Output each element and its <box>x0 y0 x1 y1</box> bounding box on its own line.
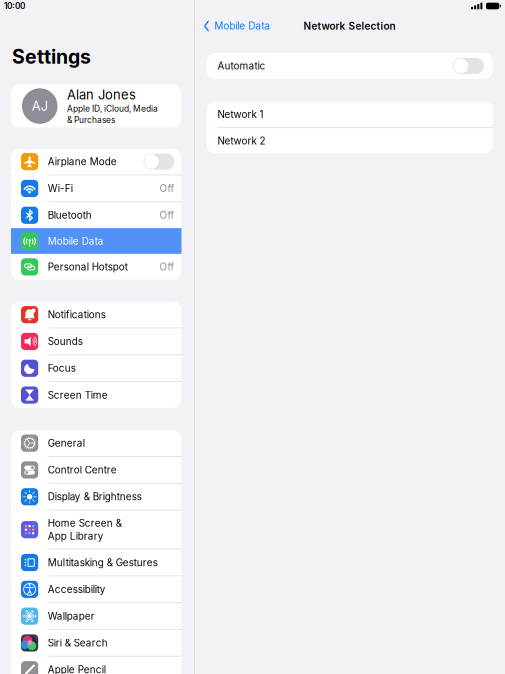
staticText: Multitasking & Gestures <box>48 557 158 568</box>
button[interactable]: Display & Brightness <box>11 484 181 510</box>
staticText: Personal Hotspot <box>48 261 128 273</box>
staticText: Off <box>159 261 174 273</box>
staticText: Apple Pencil <box>48 664 106 674</box>
staticText: AJ <box>32 98 48 114</box>
staticText: Bluetooth <box>48 209 92 221</box>
button[interactable]: Wallpaper <box>11 603 181 629</box>
button[interactable]: Control Centre <box>11 457 181 483</box>
staticText: 10:00 <box>4 1 25 11</box>
button[interactable]: Airplane Mode <box>11 149 181 175</box>
staticText: Network Selection <box>304 20 396 32</box>
button[interactable]: Screen Time <box>11 382 181 408</box>
staticText: General <box>48 437 85 449</box>
staticText: Airplane Mode <box>48 156 117 168</box>
staticText: Network 1 <box>217 108 263 120</box>
staticText: Siri & Search <box>48 637 108 649</box>
button[interactable]: AJ <box>11 85 181 128</box>
button[interactable]: Home Screen & <box>11 511 181 549</box>
button[interactable]: Accessibility <box>11 576 181 602</box>
staticText: Settings <box>12 45 91 69</box>
staticText: Sounds <box>48 335 83 347</box>
button[interactable]: Mobile Data <box>11 228 181 254</box>
button[interactable]: Network 2 <box>206 128 493 154</box>
staticText: Focus <box>48 362 76 374</box>
button[interactable]: Personal Hotspot <box>11 254 181 280</box>
staticText: Alan Jones <box>67 87 136 103</box>
staticText: Apple ID, iCloud, Media <box>67 104 158 114</box>
staticText: Network 2 <box>217 135 265 147</box>
button[interactable]: Siri & Search <box>11 630 181 656</box>
staticText: Wi-Fi <box>48 182 73 194</box>
button[interactable]: Bluetooth <box>11 202 181 228</box>
button[interactable]: Automatic <box>206 53 493 79</box>
staticText: Control Centre <box>48 464 117 476</box>
button[interactable]: Wi-Fi <box>11 176 181 201</box>
staticText: Screen Time <box>48 389 108 401</box>
button[interactable]: Notifications <box>11 302 181 328</box>
button[interactable]: Focus <box>11 355 181 381</box>
staticText: Display & Brightness <box>48 491 142 503</box>
staticText: Mobile Data <box>48 235 104 247</box>
staticText: Notifications <box>48 309 106 321</box>
staticText: Automatic <box>217 60 265 72</box>
staticText: App Library <box>48 530 104 542</box>
button[interactable]: Sounds <box>11 329 181 354</box>
staticText: Off <box>159 209 174 221</box>
button[interactable]: Network 1 <box>206 102 493 127</box>
staticText: Wallpaper <box>48 610 95 622</box>
button[interactable]: Mobile Data <box>195 12 276 40</box>
staticText: Home Screen & <box>48 517 122 529</box>
button[interactable]: General <box>11 430 181 456</box>
staticText: & Purchases <box>67 115 115 125</box>
staticText: Mobile Data <box>214 20 270 32</box>
button[interactable]: Multitasking & Gestures <box>11 550 181 575</box>
staticText: Accessibility <box>48 583 106 595</box>
staticText: Off <box>159 182 174 194</box>
button[interactable]: Apple Pencil <box>11 657 181 674</box>
